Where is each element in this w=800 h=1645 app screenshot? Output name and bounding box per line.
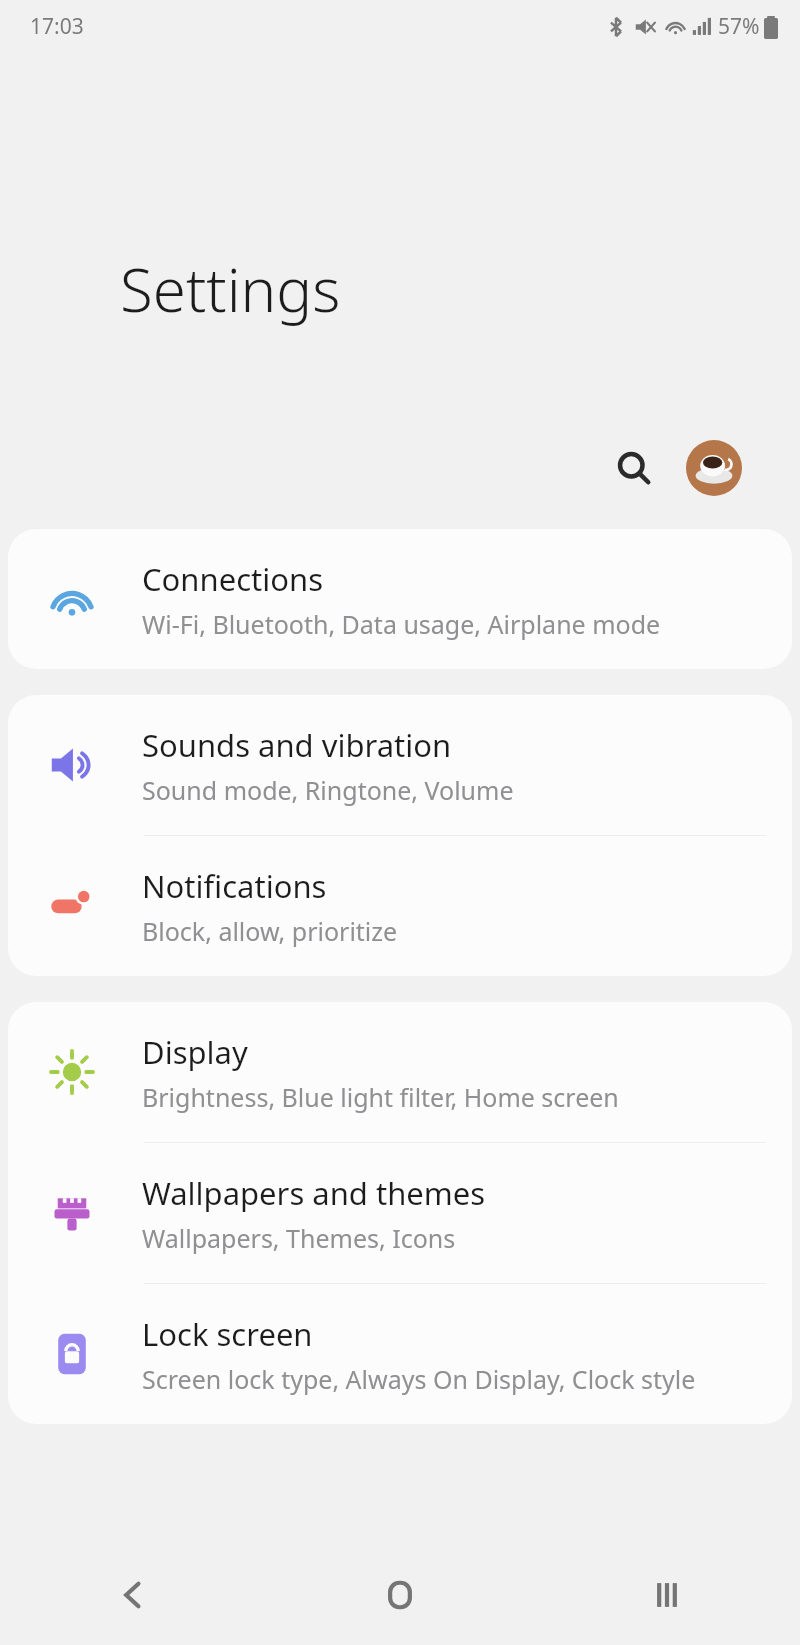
staticText: Wallpapers and themes — [142, 1172, 486, 1214]
staticText: Wi-Fi, Bluetooth, Data usage, Airplane m… — [142, 607, 661, 641]
staticText: Settings — [120, 248, 341, 330]
staticText: Sounds and vibration — [142, 724, 452, 766]
staticText: Sound mode, Ringtone, Volume — [142, 773, 514, 807]
button[interactable]: Sounds and vibration — [8, 695, 792, 835]
staticText: Connections — [142, 558, 323, 600]
staticText: Block, allow, prioritize — [142, 914, 398, 948]
staticText: Notifications — [142, 865, 327, 907]
staticText: Screen lock type, Always On Display, Clo… — [142, 1362, 696, 1396]
button[interactable]: Home — [266, 1545, 533, 1645]
button[interactable]: Recents — [533, 1545, 800, 1645]
staticText: 57% — [718, 12, 760, 41]
button[interactable]: Search — [606, 440, 662, 496]
staticText: Lock screen — [142, 1313, 313, 1355]
button[interactable]: Notifications — [8, 836, 792, 976]
staticText: Wallpapers, Themes, Icons — [142, 1221, 456, 1255]
staticText: 17:03 — [30, 12, 84, 41]
button[interactable]: Back — [0, 1545, 266, 1645]
button[interactable]: Account — [686, 440, 742, 496]
button[interactable]: Lock screen — [8, 1284, 792, 1424]
button[interactable]: Wallpapers and themes — [8, 1143, 792, 1283]
button[interactable]: Display — [8, 1002, 792, 1142]
staticText: Brightness, Blue light filter, Home scre… — [142, 1080, 619, 1114]
button[interactable]: Connections — [8, 529, 792, 669]
staticText: Display — [142, 1031, 248, 1073]
